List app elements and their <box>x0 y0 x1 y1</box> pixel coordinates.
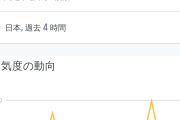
button[interactable]: 日本, 過去 4 時間 <box>0 12 180 43</box>
staticText: 日本, 過去 4 時間 <box>5 22 66 33</box>
staticText: 関連トピック 検索 <box>4 0 70 2</box>
staticText: 0 <box>0 96 2 104</box>
staticText: 人気度の動向 <box>0 59 56 72</box>
